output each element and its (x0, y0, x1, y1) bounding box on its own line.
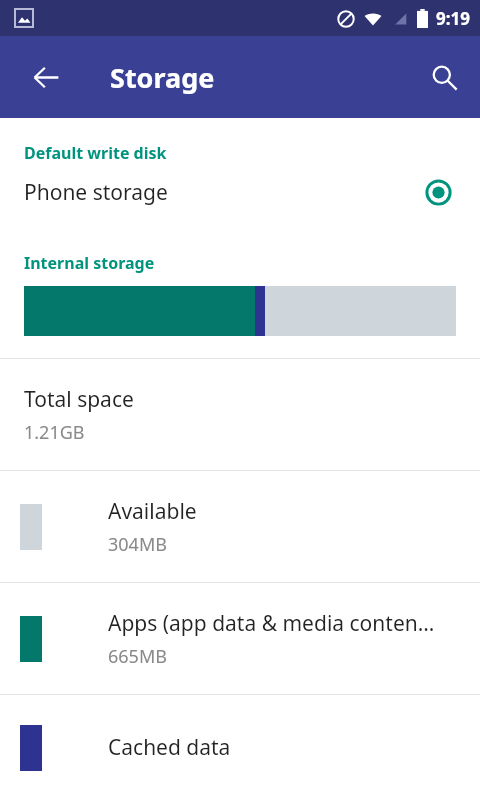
button[interactable]: Apps (app data & media conten… (0, 583, 480, 694)
staticText: Phone storage (24, 178, 168, 207)
button[interactable]: Cached data (0, 695, 480, 800)
staticText: 665MB (108, 644, 167, 669)
button[interactable]: Back (22, 53, 70, 101)
staticText: Available (108, 497, 197, 526)
button[interactable]: Search (420, 53, 468, 101)
staticText: Default write disk (24, 142, 167, 164)
staticText: 1.21GB (24, 420, 85, 445)
staticText: 9:19 (436, 7, 470, 30)
staticText: Total space (24, 385, 134, 414)
button[interactable]: Phone storage (0, 164, 480, 220)
button[interactable]: Total space (0, 359, 480, 470)
staticText: Apps (app data & media conten… (108, 609, 435, 638)
staticText: 304MB (108, 532, 167, 557)
staticText: Cached data (108, 733, 231, 762)
button[interactable]: Available (0, 471, 480, 582)
staticText: Internal storage (24, 252, 155, 274)
staticText: Storage (110, 59, 215, 96)
